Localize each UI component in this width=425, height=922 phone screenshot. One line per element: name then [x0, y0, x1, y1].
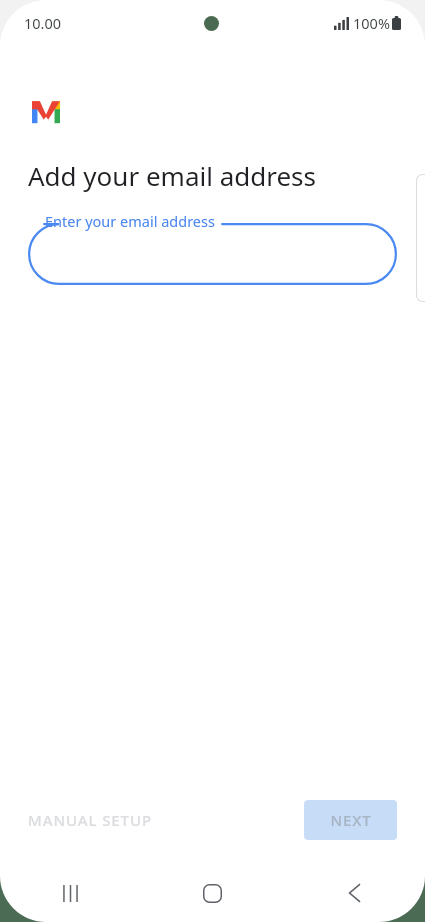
button[interactable]: NEXT: [304, 800, 397, 840]
button[interactable]: MANUAL SETUP: [12, 798, 168, 842]
staticText: 100%: [353, 13, 390, 33]
button[interactable]: Enter your email address: [28, 211, 397, 285]
staticText: 10.00: [24, 13, 62, 33]
button[interactable]: Back: [283, 864, 425, 922]
staticText: NEXT: [330, 810, 372, 830]
staticText: Enter your email address: [45, 211, 215, 231]
button[interactable]: Recent apps: [0, 864, 141, 922]
staticText: MANUAL SETUP: [28, 810, 152, 830]
button[interactable]: Home: [141, 864, 283, 922]
staticText: Add your email address: [28, 158, 317, 193]
